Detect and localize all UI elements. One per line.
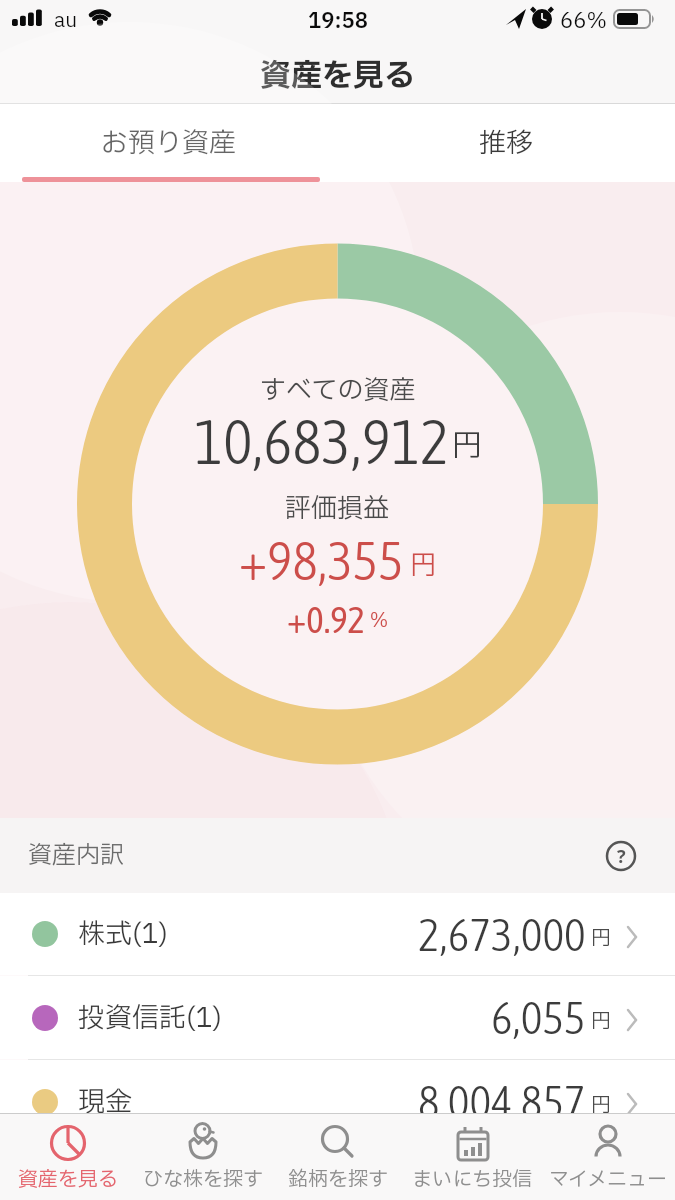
staticText: 66% (560, 6, 607, 37)
staticText: +98,355 (239, 530, 404, 592)
staticText: % (365, 607, 389, 635)
staticText: 19:58 (308, 6, 368, 37)
staticText: お預り資産 (101, 123, 236, 163)
staticText: au (54, 6, 78, 36)
staticText: 円 (586, 1091, 611, 1121)
staticText: 銘柄を探す (288, 1165, 388, 1195)
staticText: すべての資産 (260, 371, 416, 410)
staticText: 2,673,000 (418, 908, 586, 961)
staticText: 6,055 (491, 991, 586, 1044)
staticText: 推移 (479, 123, 533, 163)
staticText: 円 (404, 546, 437, 585)
staticText: 円 (586, 924, 611, 954)
staticText: 株式(1) (78, 914, 169, 954)
staticText: 8,004,857 (418, 1075, 586, 1128)
staticText: 資産内訳 (28, 838, 124, 874)
staticText: まいにち投信 (412, 1165, 533, 1195)
staticText: 資産を見る (18, 1165, 118, 1195)
staticText: マイメニュー (549, 1165, 667, 1195)
staticText: 現金 (78, 1082, 132, 1122)
staticText: ? (617, 844, 626, 869)
staticText: 10,683,912 (194, 406, 450, 476)
staticText: ひな株を探す (143, 1165, 263, 1195)
staticText: 円 (452, 424, 482, 469)
staticText: 円 (586, 1007, 611, 1037)
staticText: +0.92 (287, 598, 365, 640)
staticText: 資産を見る (260, 53, 415, 99)
staticText: 投資信託(1) (78, 998, 223, 1038)
staticText: 評価損益 (285, 489, 390, 528)
